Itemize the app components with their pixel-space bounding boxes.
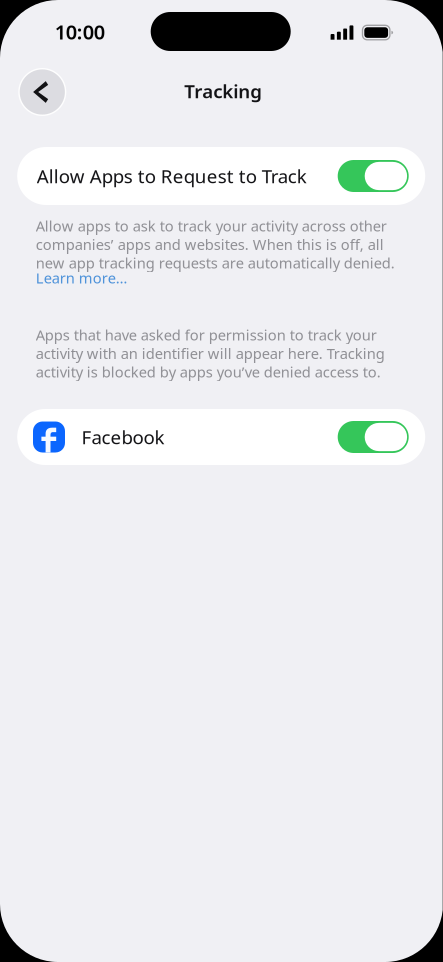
staticText: Allow apps to ask to track your activity… — [36, 216, 395, 272]
staticText: 10:00 — [55, 18, 105, 45]
button[interactable]: Allow Apps to Request to Track — [17, 147, 425, 205]
button[interactable]: Learn more… — [36, 268, 398, 287]
staticText: Apps that have asked for permission to t… — [36, 325, 385, 381]
button[interactable]: Facebook — [17, 409, 425, 465]
staticText: Tracking — [184, 78, 262, 103]
button[interactable]: Back — [18, 68, 66, 116]
staticText: Facebook — [81, 425, 164, 449]
staticText: Allow Apps to Request to Track — [37, 164, 307, 188]
staticText: Learn more… — [36, 268, 128, 287]
